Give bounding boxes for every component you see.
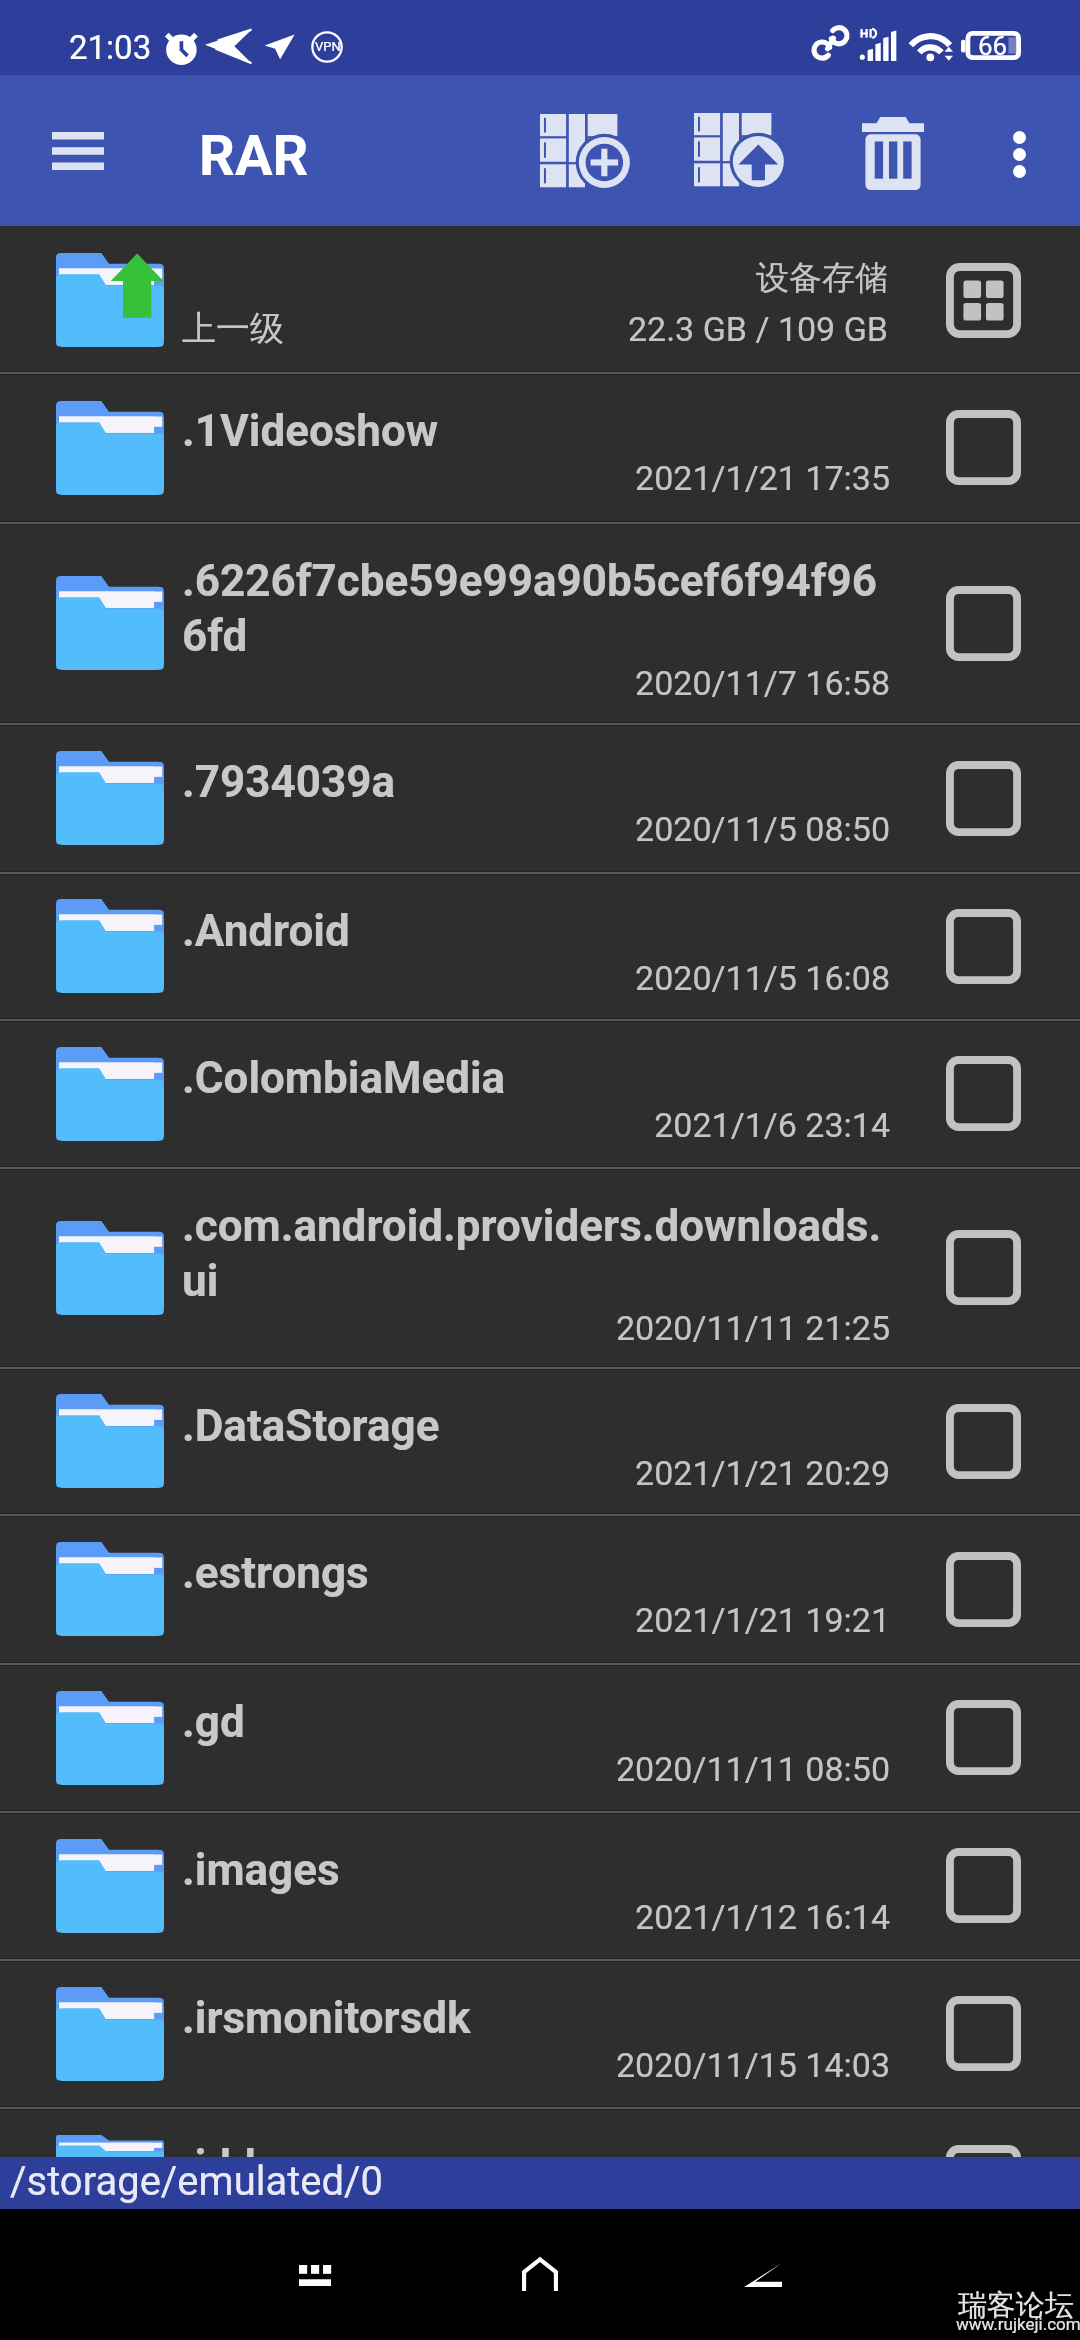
staticText: RAR: [199, 123, 309, 189]
staticText: .Android: [182, 905, 350, 957]
staticText: 2021/1/6 23:14: [182, 1105, 890, 1145]
staticText: VPN: [315, 39, 341, 54]
button[interactable]: Open navigation drawer: [23, 109, 133, 193]
button[interactable]: Back: [688, 2223, 838, 2327]
staticText: .gd: [182, 1696, 245, 1748]
staticText: 2020/11/11 08:50: [182, 1749, 890, 1789]
staticText: 设备存储: [0, 257, 888, 299]
staticText: 22.3 GB / 109 GB: [0, 309, 888, 349]
button[interactable]: .com.android.providers.downloads.ui: [0, 1170, 1080, 1366]
staticText: .irsmonitorsdk: [182, 1992, 471, 2044]
button[interactable]: More options: [974, 108, 1064, 200]
button[interactable]: .DataStorage: [0, 1370, 1080, 1513]
staticText: 2021/1/21 17:35: [182, 458, 890, 498]
staticText: 2020/11/11 21:25: [182, 1308, 890, 1348]
button[interactable]: .ColombiaMedia: [0, 1022, 1080, 1166]
button[interactable]: .6226f7cbe59e99a90b5cef6f94f966fd: [0, 525, 1080, 722]
staticText: .DataStorage: [182, 1400, 440, 1452]
button[interactable]: Delete: [847, 101, 939, 205]
staticText: .ColombiaMedia: [182, 1052, 506, 1104]
staticText: .1Videoshow: [182, 405, 439, 457]
staticText: .jdd: [182, 2140, 256, 2187]
button[interactable]: .gd: [0, 1666, 1080, 1810]
staticText: .com.android.providers.downloads.ui: [182, 1200, 890, 1307]
button[interactable]: Add to archive: [520, 101, 650, 201]
button[interactable]: .jdd: [0, 2110, 1080, 2157]
staticText: www.rujkeji.com: [956, 2314, 1080, 2334]
staticText: 2021/1/21 20:29: [182, 1453, 890, 1493]
staticText: 瑞客论坛: [958, 2287, 1074, 2324]
button[interactable]: .images: [0, 1814, 1080, 1958]
button[interactable]: .7934039a: [0, 726, 1080, 871]
staticText: 上一级: [182, 307, 284, 350]
staticText: 2021/1/21 19:21: [182, 1600, 890, 1640]
staticText: .estrongs: [182, 1547, 369, 1599]
button[interactable]: .irsmonitorsdk: [0, 1962, 1080, 2106]
button[interactable]: Home: [465, 2223, 615, 2327]
button[interactable]: .Android: [0, 875, 1080, 1018]
staticText: 21:03: [69, 28, 152, 67]
staticText: .7934039a: [182, 756, 396, 808]
staticText: 2020/11/7 16:58: [182, 663, 890, 703]
staticText: /storage/emulated/0: [10, 2158, 384, 2205]
button[interactable]: .1Videoshow: [0, 375, 1080, 521]
staticText: .images: [182, 1844, 340, 1896]
staticText: .6226f7cbe59e99a90b5cef6f94f966fd: [182, 555, 890, 662]
button[interactable]: Recent apps: [240, 2223, 390, 2327]
staticText: 2020/11/5 16:08: [182, 958, 890, 998]
button[interactable]: 上一级: [0, 226, 1080, 371]
staticText: 66: [978, 31, 1008, 61]
button[interactable]: .estrongs: [0, 1517, 1080, 1662]
staticText: 2020/11/15 14:03: [182, 2045, 890, 2085]
staticText: 2020/11/5 08:50: [182, 809, 890, 849]
button[interactable]: Extract archive: [674, 100, 804, 200]
staticText: 2021/1/12 16:14: [182, 1897, 890, 1937]
